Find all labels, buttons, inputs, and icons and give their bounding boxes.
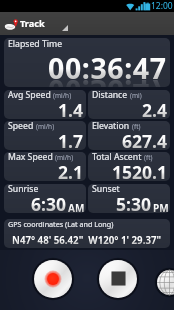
button[interactable]: Record bbox=[30, 256, 76, 302]
staticText: N47° 48' 56.42" W120° 1' 29.37" bbox=[12, 234, 162, 247]
button[interactable]: Distance bbox=[88, 90, 170, 119]
staticText: 1.7 bbox=[58, 129, 83, 150]
staticText: Speed bbox=[8, 121, 34, 132]
staticText: (mi) bbox=[130, 91, 142, 100]
staticText: 2.4 bbox=[142, 98, 167, 119]
staticText: Distance bbox=[92, 90, 128, 101]
staticText: 12:00 bbox=[151, 0, 173, 12]
staticText: (mi/h) bbox=[53, 91, 72, 100]
staticText: 1.4 bbox=[58, 98, 83, 119]
staticText: Elapsed Time bbox=[8, 38, 63, 50]
staticText: 1520.1 bbox=[112, 160, 167, 181]
staticText: 5:30 bbox=[116, 192, 151, 213]
button[interactable]: Elevation bbox=[88, 121, 170, 150]
staticText: Sunrise bbox=[8, 184, 39, 195]
staticText: (ft) bbox=[132, 122, 141, 131]
button[interactable]: GPS coordinates (Lat and Long) bbox=[4, 219, 170, 248]
button[interactable]: Stop bbox=[95, 256, 141, 302]
staticText: (ft) bbox=[144, 153, 153, 162]
staticText: AM bbox=[68, 201, 85, 213]
button[interactable]: Avg Speed bbox=[4, 90, 86, 119]
button[interactable]: Sunrise bbox=[4, 184, 86, 213]
staticText: GPS coordinates (Lat and Long) bbox=[8, 219, 114, 229]
staticText: Total Ascent bbox=[92, 152, 142, 163]
staticText: Max Speed bbox=[8, 152, 53, 163]
staticText: 00:36:47 bbox=[48, 49, 167, 87]
button[interactable]: Map bbox=[154, 267, 174, 298]
staticText: (mi/h) bbox=[36, 122, 55, 131]
staticText: 6:30 bbox=[31, 192, 66, 213]
button[interactable]: Max Speed bbox=[4, 152, 86, 181]
button[interactable]: Elapsed Time bbox=[4, 38, 170, 87]
staticText: 2.1 bbox=[58, 160, 83, 181]
button[interactable]: Speed bbox=[4, 121, 86, 150]
button[interactable]: Sunset bbox=[88, 184, 170, 213]
button[interactable]: Total Ascent bbox=[88, 152, 170, 181]
button[interactable]: Track bbox=[0, 12, 41, 35]
staticText: 627.4 bbox=[122, 129, 167, 150]
staticText: Sunset bbox=[92, 184, 120, 195]
staticText: 00:36:47 bbox=[48, 71, 167, 87]
staticText: Track bbox=[20, 17, 45, 30]
staticText: Elevation bbox=[92, 121, 130, 132]
staticText: PM bbox=[153, 201, 169, 213]
staticText: Avg Speed bbox=[8, 90, 51, 101]
staticText: (mi/h) bbox=[55, 153, 74, 162]
